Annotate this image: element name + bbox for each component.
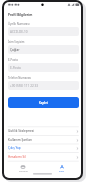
staticText: Kartlarım bbox=[19, 170, 28, 173]
button[interactable]: E-Posta bbox=[8, 63, 79, 72]
staticText: Kullanım Şartları bbox=[8, 138, 33, 142]
button[interactable]: Kullanım Şartları bbox=[4, 136, 81, 144]
staticText: Çağlar bbox=[10, 48, 20, 52]
staticText: İsim Soyisim bbox=[8, 40, 25, 44]
staticText: Profil Bilgilerim bbox=[8, 13, 33, 17]
staticText: Telefon Numarası bbox=[8, 76, 32, 80]
staticText: E-Posta bbox=[8, 58, 18, 62]
staticText: Üyelik Numarası bbox=[8, 22, 30, 26]
staticText: Profil bbox=[59, 170, 64, 173]
button[interactable]: Çıkış Yap bbox=[4, 144, 81, 152]
button[interactable]: Gizlilik Sözleşmesi bbox=[4, 127, 81, 135]
button[interactable]: Kaydet bbox=[8, 97, 79, 108]
button[interactable]: +90 (555) 111 22 33 bbox=[8, 81, 79, 90]
button[interactable]: Hesabımı Sil bbox=[4, 153, 81, 161]
staticText: Çıkış Yap bbox=[8, 146, 21, 150]
button[interactable]: Kartlarım bbox=[4, 165, 42, 173]
staticText: Gizlilik Sözleşmesi bbox=[8, 129, 35, 133]
staticText: Kaydet bbox=[39, 101, 48, 105]
staticText: +90 (555) 111 22 33 bbox=[10, 84, 39, 88]
staticText: E-Posta bbox=[10, 66, 21, 70]
staticText: ACCD-DE-10 bbox=[10, 30, 28, 34]
button[interactable]: Çağlar bbox=[8, 45, 79, 54]
button[interactable]: Profil bbox=[42, 165, 81, 173]
staticText: Hesabımı Sil bbox=[8, 155, 26, 159]
button[interactable]: ACCD-DE-10 bbox=[8, 27, 79, 36]
